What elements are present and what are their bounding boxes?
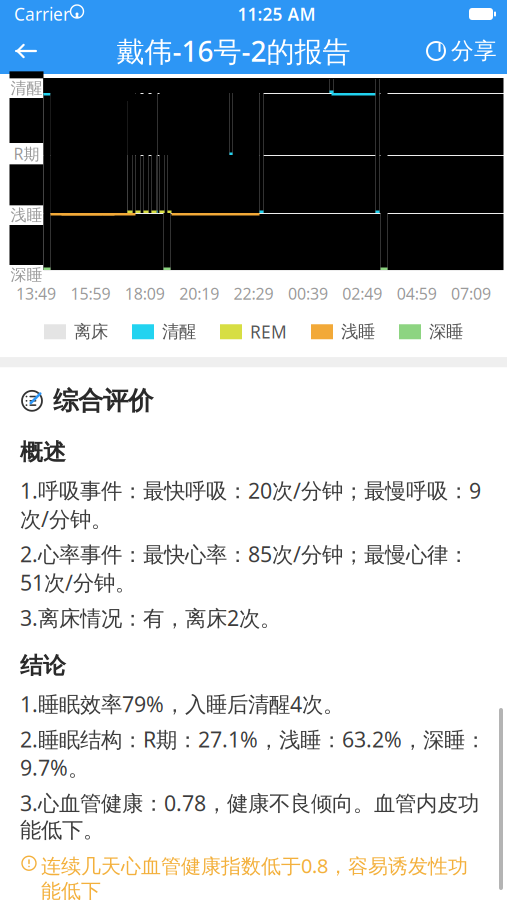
- staticText: 22:29: [233, 283, 273, 304]
- staticText: REM: [250, 320, 287, 343]
- staticText: 离床: [74, 321, 108, 342]
- button[interactable]: 返回: [0, 29, 52, 73]
- staticText: 20:19: [179, 283, 219, 304]
- staticText: 戴伟-16号-2的报告: [116, 32, 350, 70]
- staticText: 18:09: [125, 283, 165, 304]
- staticText: 1.睡眠效率79%，入睡后清醒4次。: [20, 690, 344, 718]
- staticText: 1.呼吸事件：最快呼吸：20次/分钟；最慢呼吸：9次/分钟。: [20, 476, 481, 533]
- staticText: 15:59: [70, 283, 110, 304]
- staticText: 连续几天心血管健康指数低于0.8，容易诱发性功能低下: [41, 852, 468, 900]
- staticText: 00:39: [288, 283, 328, 304]
- staticText: Carrier: [14, 2, 70, 25]
- staticText: 3.心血管健康：0.78，健康不良倾向。血管内皮功能低下。: [20, 789, 479, 843]
- staticText: 分享: [451, 37, 497, 65]
- staticText: 11:25 AM: [237, 2, 315, 25]
- staticText: 3.离床情况：有，离床2次。: [20, 603, 281, 632]
- staticText: 浅睡: [341, 321, 375, 342]
- staticText: 结论: [20, 652, 66, 680]
- staticText: 07:09: [451, 283, 491, 304]
- staticText: 2.心率事件：最快心率：85次/分钟；最慢心律：51次/分钟。: [20, 540, 469, 597]
- staticText: R期: [13, 143, 39, 164]
- staticText: 02:49: [342, 283, 382, 304]
- staticText: 概述: [20, 438, 66, 466]
- staticText: 浅睡: [10, 205, 42, 225]
- staticText: 清醒: [162, 321, 196, 342]
- staticText: 综合评价: [53, 385, 153, 416]
- staticText: 2.睡眠结构：R期：27.1%，浅睡：63.2%，深睡：9.7%。: [20, 725, 486, 782]
- staticText: 04:59: [397, 283, 437, 304]
- staticText: 深睡: [10, 265, 42, 285]
- staticText: 13:49: [16, 283, 56, 304]
- staticText: 清醒: [10, 78, 42, 98]
- staticText: 深睡: [429, 321, 463, 342]
- button[interactable]: 分享: [415, 29, 507, 73]
